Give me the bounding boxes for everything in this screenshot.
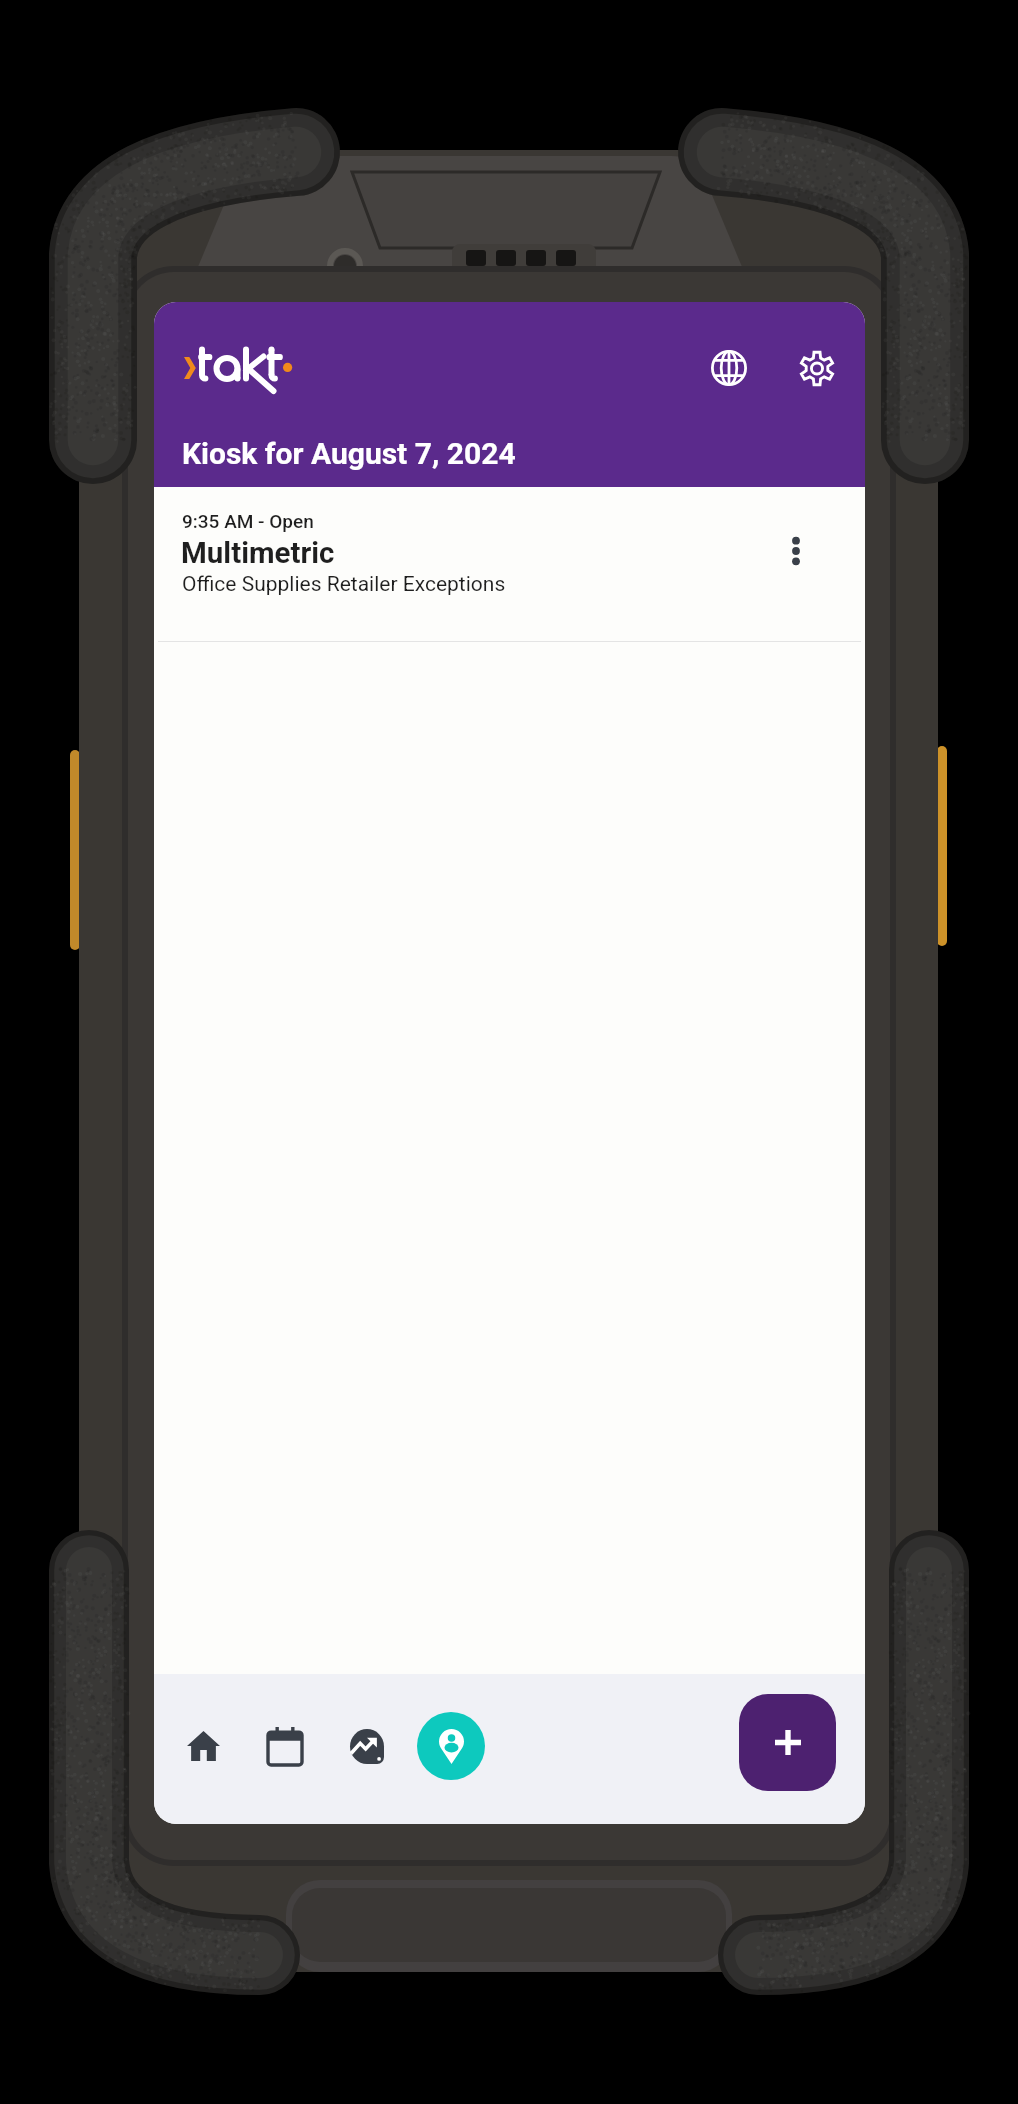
button[interactable]: More options (757, 503, 835, 599)
button[interactable]: Home (166, 1691, 240, 1801)
staticText: Multimetric (181, 536, 335, 571)
button[interactable]: Settings (785, 336, 849, 400)
button[interactable]: Language (697, 336, 761, 400)
staticText: 9:35 AM - Open (182, 510, 314, 532)
staticText: Office Supplies Retailer Exceptions (182, 572, 506, 597)
button[interactable]: 9:35 AM - Open (154, 487, 865, 642)
button[interactable]: People (417, 1712, 485, 1780)
button[interactable]: Insights (330, 1691, 404, 1801)
staticText: Kiosk for August 7, 2024 (182, 436, 516, 471)
button[interactable]: Add (739, 1694, 836, 1791)
button[interactable]: Calendar (248, 1691, 322, 1801)
